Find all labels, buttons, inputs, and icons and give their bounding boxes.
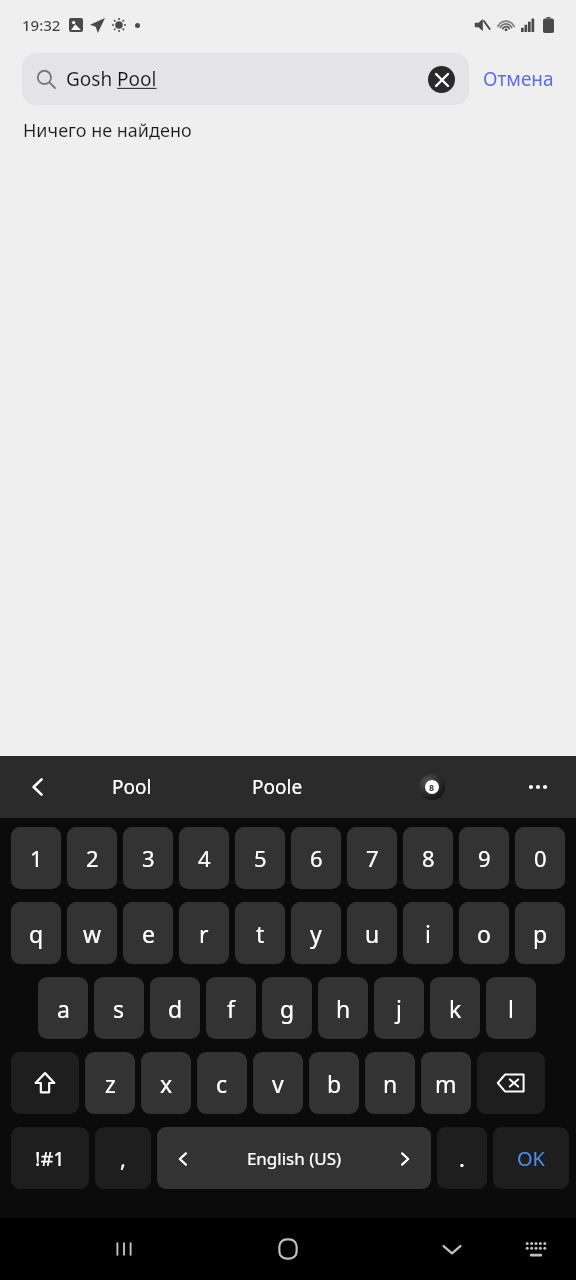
- button[interactable]: Hide keyboard: [424, 1221, 480, 1277]
- staticText: c: [216, 1068, 228, 1099]
- button[interactable]: y: [291, 902, 341, 964]
- staticText: Gosh Pool: [66, 66, 157, 92]
- staticText: 19:32: [22, 15, 61, 35]
- staticText: .: [459, 1143, 465, 1173]
- staticText: 8: [429, 781, 435, 793]
- button[interactable]: 1: [11, 827, 61, 889]
- button[interactable]: h: [318, 977, 368, 1039]
- staticText: !#1: [35, 1145, 65, 1172]
- staticText: 4: [198, 843, 211, 873]
- button[interactable]: !#1: [11, 1127, 89, 1189]
- button[interactable]: d: [150, 977, 200, 1039]
- button[interactable]: Отмена: [469, 58, 558, 100]
- button[interactable]: Poole: [240, 766, 315, 808]
- staticText: 2: [86, 843, 99, 873]
- staticText: w: [83, 918, 102, 949]
- staticText: g: [280, 993, 295, 1024]
- staticText: 1: [30, 843, 43, 873]
- staticText: 6: [310, 843, 323, 873]
- staticText: ,: [120, 1143, 126, 1173]
- staticText: p: [533, 918, 548, 949]
- button[interactable]: OK: [493, 1127, 569, 1189]
- button[interactable]: Home: [260, 1221, 316, 1277]
- staticText: m: [435, 1068, 457, 1099]
- button[interactable]: b: [309, 1052, 359, 1114]
- staticText: j: [396, 993, 402, 1024]
- button[interactable]: f: [206, 977, 256, 1039]
- button[interactable]: 8: [403, 827, 453, 889]
- staticText: 0: [534, 843, 547, 873]
- button[interactable]: g: [262, 977, 312, 1039]
- staticText: d: [168, 993, 183, 1024]
- button[interactable]: w: [67, 902, 117, 964]
- staticText: 5: [254, 843, 267, 873]
- button[interactable]: 4: [179, 827, 229, 889]
- button[interactable]: Change keyboard: [510, 1223, 562, 1275]
- staticText: u: [365, 918, 380, 949]
- button[interactable]: 0: [515, 827, 565, 889]
- button[interactable]: r: [179, 902, 229, 964]
- button[interactable]: 3: [123, 827, 173, 889]
- button[interactable]: v: [253, 1052, 303, 1114]
- button[interactable]: Shift: [11, 1052, 79, 1114]
- staticText: Отмена: [483, 66, 554, 92]
- staticText: Pool: [112, 774, 152, 800]
- button[interactable]: English (US): [157, 1127, 431, 1189]
- button[interactable]: o: [459, 902, 509, 964]
- button[interactable]: Emoji suggestion: [410, 765, 454, 809]
- button[interactable]: .: [437, 1127, 487, 1189]
- button[interactable]: t: [235, 902, 285, 964]
- staticText: e: [142, 918, 155, 949]
- staticText: 3: [142, 843, 155, 873]
- button[interactable]: c: [197, 1052, 247, 1114]
- button[interactable]: k: [430, 977, 480, 1039]
- button[interactable]: n: [365, 1052, 415, 1114]
- button[interactable]: z: [85, 1052, 135, 1114]
- button[interactable]: l: [486, 977, 536, 1039]
- staticText: 9: [478, 843, 491, 873]
- button[interactable]: u: [347, 902, 397, 964]
- button[interactable]: Previous suggestions: [16, 765, 60, 809]
- staticText: Poole: [252, 774, 303, 800]
- button[interactable]: x: [141, 1052, 191, 1114]
- button[interactable]: 6: [291, 827, 341, 889]
- staticText: b: [327, 1068, 342, 1099]
- staticText: n: [383, 1068, 398, 1099]
- button[interactable]: Clear text: [428, 66, 455, 93]
- staticText: q: [29, 918, 44, 949]
- button[interactable]: Recent apps: [96, 1221, 152, 1277]
- staticText: z: [105, 1068, 116, 1099]
- staticText: x: [160, 1068, 173, 1099]
- staticText: f: [227, 993, 235, 1024]
- button[interactable]: Gosh Pool: [22, 53, 469, 105]
- staticText: o: [477, 918, 491, 949]
- button[interactable]: 7: [347, 827, 397, 889]
- staticText: l: [508, 993, 514, 1024]
- button[interactable]: p: [515, 902, 565, 964]
- button[interactable]: e: [123, 902, 173, 964]
- button[interactable]: More options: [516, 765, 560, 809]
- button[interactable]: m: [421, 1052, 471, 1114]
- staticText: r: [199, 918, 209, 949]
- button[interactable]: 5: [235, 827, 285, 889]
- staticText: English (US): [191, 1147, 397, 1170]
- staticText: y: [310, 918, 322, 949]
- staticText: Ничего не найдено: [23, 118, 192, 143]
- staticText: a: [57, 993, 70, 1024]
- button[interactable]: 9: [459, 827, 509, 889]
- button[interactable]: s: [94, 977, 144, 1039]
- staticText: v: [272, 1068, 284, 1099]
- staticText: i: [425, 918, 431, 949]
- staticText: s: [113, 993, 125, 1024]
- staticText: 7: [366, 843, 379, 873]
- button[interactable]: Pool: [100, 766, 164, 808]
- button[interactable]: q: [11, 902, 61, 964]
- staticText: t: [256, 918, 265, 949]
- button[interactable]: 2: [67, 827, 117, 889]
- button[interactable]: Backspace: [477, 1052, 545, 1114]
- button[interactable]: j: [374, 977, 424, 1039]
- button[interactable]: i: [403, 902, 453, 964]
- staticText: h: [336, 993, 351, 1024]
- button[interactable]: a: [38, 977, 88, 1039]
- button[interactable]: ,: [95, 1127, 151, 1189]
